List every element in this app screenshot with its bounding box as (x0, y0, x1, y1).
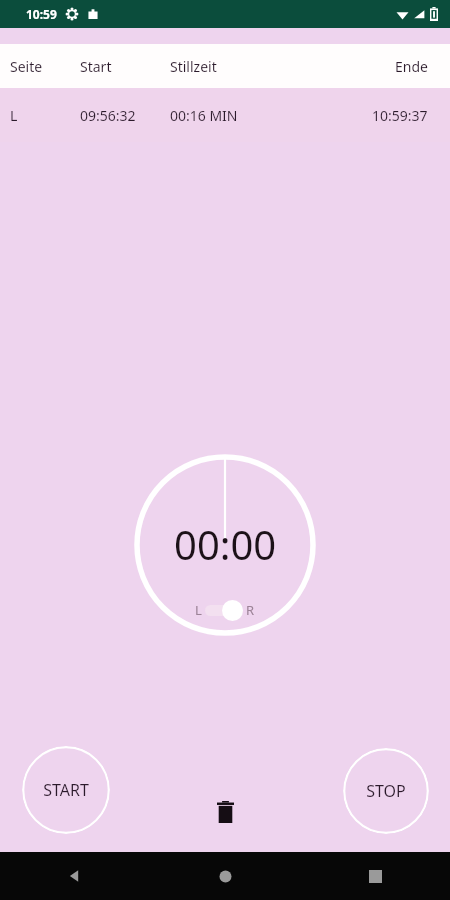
button[interactable]: Recent apps (300, 852, 450, 900)
staticText: Stillzeit (170, 57, 217, 76)
button[interactable]: STOP (343, 748, 429, 834)
staticText: Seite (10, 57, 43, 76)
staticText: 10:59:37 (372, 106, 428, 125)
button[interactable]: Back (0, 852, 150, 900)
staticText: R (246, 601, 255, 619)
staticText: L (10, 106, 18, 125)
staticText: L (195, 601, 202, 619)
staticText: 10:59 (26, 6, 57, 22)
button[interactable]: START (22, 746, 110, 834)
button[interactable]: Home (150, 852, 300, 900)
staticText: STOP (366, 780, 406, 802)
staticText: Ende (395, 57, 428, 76)
button[interactable]: L (0, 88, 450, 142)
staticText: Start (80, 57, 112, 76)
staticText: START (43, 779, 89, 801)
staticText: 00:00 (174, 517, 277, 571)
staticText: 09:56:32 (80, 106, 136, 125)
button[interactable]: L (195, 599, 255, 621)
staticText: 00:16 MIN (170, 106, 238, 125)
button[interactable]: Delete (207, 794, 243, 830)
